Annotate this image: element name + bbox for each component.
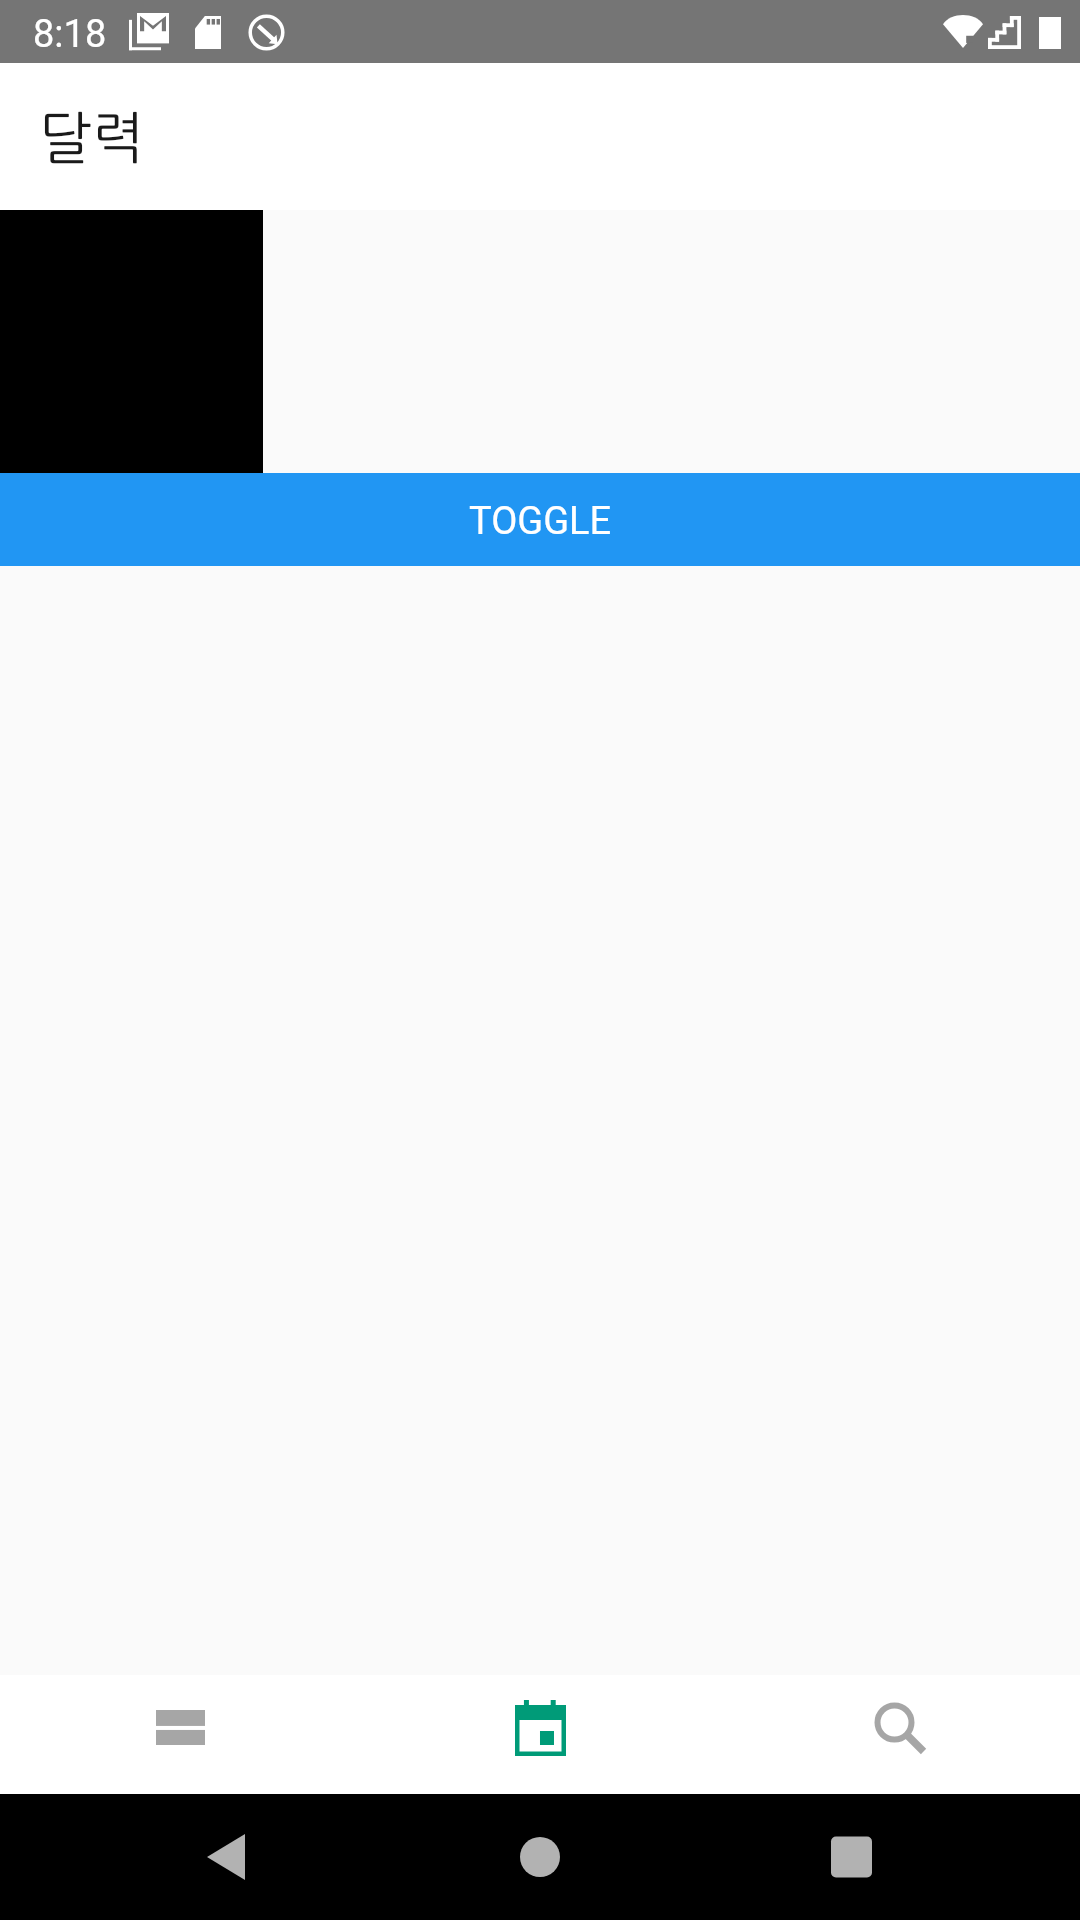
button[interactable]: Calendar view [360, 1675, 720, 1780]
button[interactable]: Back [0, 1794, 360, 1920]
staticText: TOGGLE [469, 499, 612, 544]
staticText: 8:18 [33, 12, 107, 57]
button[interactable]: Recent apps [720, 1794, 1080, 1920]
button[interactable]: Search [720, 1675, 1080, 1780]
staticText: 달력 [39, 110, 145, 166]
button[interactable]: TOGGLE [0, 473, 1080, 566]
button[interactable]: Home [360, 1794, 720, 1920]
button[interactable]: Agenda view [0, 1675, 360, 1780]
